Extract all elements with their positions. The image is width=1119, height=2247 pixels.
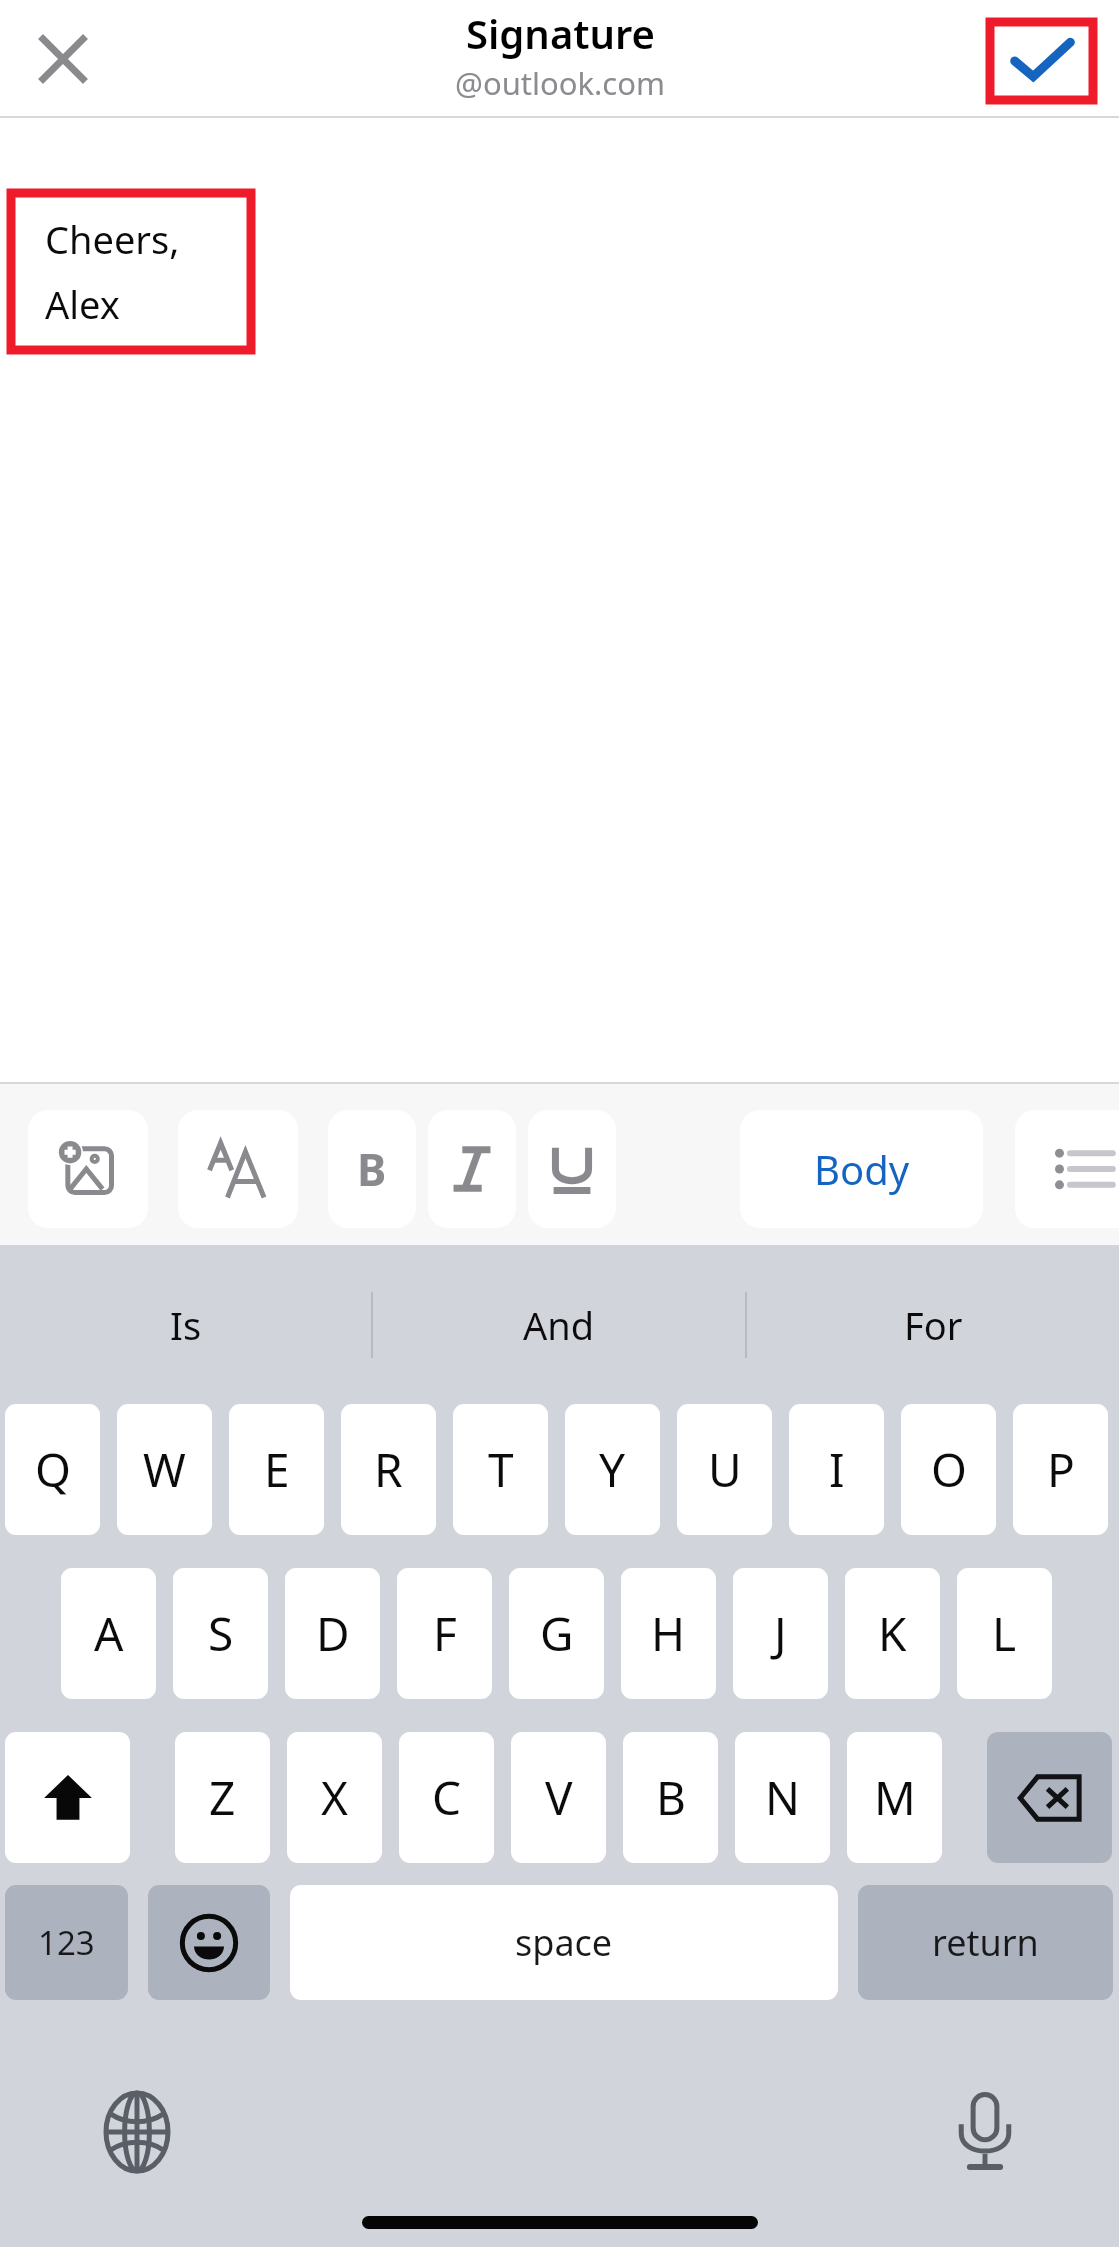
staticText: T bbox=[488, 1438, 514, 1501]
staticText: U bbox=[708, 1438, 742, 1501]
button[interactable]: N bbox=[735, 1732, 830, 1863]
staticText: X bbox=[321, 1766, 348, 1829]
staticText: F bbox=[433, 1602, 457, 1665]
button[interactable]: D bbox=[285, 1568, 380, 1699]
other: Underline bbox=[549, 1146, 595, 1192]
staticText: Z bbox=[209, 1766, 236, 1829]
button[interactable]: Is bbox=[0, 1245, 371, 1405]
button[interactable]: Bulleted list bbox=[1015, 1110, 1119, 1228]
staticText: E bbox=[264, 1438, 290, 1501]
button[interactable]: Done bbox=[990, 22, 1093, 100]
staticText: Is bbox=[170, 1299, 202, 1351]
other: Bulleted list bbox=[1056, 1147, 1114, 1191]
staticText: Body bbox=[814, 1142, 910, 1196]
button[interactable]: P bbox=[1013, 1404, 1108, 1535]
staticText: And bbox=[523, 1299, 595, 1351]
staticText: K bbox=[878, 1602, 907, 1665]
staticText: B bbox=[357, 1139, 387, 1199]
staticText: N bbox=[765, 1766, 800, 1829]
staticText: B bbox=[656, 1766, 686, 1829]
staticText: V bbox=[545, 1766, 573, 1829]
staticText: For bbox=[904, 1299, 963, 1351]
button[interactable]: W bbox=[117, 1404, 212, 1535]
button[interactable]: B bbox=[328, 1110, 416, 1228]
staticText: G bbox=[540, 1602, 574, 1665]
button[interactable]: Body bbox=[740, 1110, 983, 1228]
staticText: return bbox=[932, 1918, 1039, 1967]
button[interactable]: S bbox=[173, 1568, 268, 1699]
staticText: @outlook.com bbox=[455, 62, 665, 104]
staticText: space bbox=[515, 1918, 613, 1967]
other: Insert image bbox=[60, 1141, 116, 1197]
button[interactable]: J bbox=[733, 1568, 828, 1699]
button[interactable]: Change keyboard bbox=[95, 2090, 179, 2174]
staticText: Alex bbox=[45, 278, 120, 330]
button[interactable]: Backspace bbox=[987, 1732, 1112, 1863]
button[interactable]: Emoji bbox=[148, 1885, 270, 2000]
staticText: Signature bbox=[466, 6, 655, 60]
button[interactable]: K bbox=[845, 1568, 940, 1699]
button[interactable]: Shift bbox=[5, 1732, 130, 1863]
button[interactable]: O bbox=[901, 1404, 996, 1535]
button[interactable]: Underline bbox=[528, 1110, 616, 1228]
button[interactable]: Z bbox=[175, 1732, 270, 1863]
staticText: Y bbox=[599, 1438, 626, 1501]
button[interactable]: H bbox=[621, 1568, 716, 1699]
button[interactable]: G bbox=[509, 1568, 604, 1699]
button[interactable]: C bbox=[399, 1732, 494, 1863]
button[interactable]: Q bbox=[5, 1404, 100, 1535]
button[interactable]: M bbox=[847, 1732, 942, 1863]
button[interactable]: L bbox=[957, 1568, 1052, 1699]
staticText: C bbox=[432, 1766, 462, 1829]
button[interactable]: E bbox=[229, 1404, 324, 1535]
button[interactable]: A bbox=[61, 1568, 156, 1699]
staticText: I bbox=[829, 1438, 845, 1501]
staticText: 123 bbox=[38, 1920, 95, 1965]
button[interactable]: Y bbox=[565, 1404, 660, 1535]
button[interactable]: space bbox=[290, 1885, 838, 2000]
button[interactable]: R bbox=[341, 1404, 436, 1535]
button[interactable]: Insert image bbox=[28, 1110, 148, 1228]
button[interactable]: Close bbox=[18, 14, 108, 104]
button[interactable]: F bbox=[397, 1568, 492, 1699]
staticText: Q bbox=[35, 1438, 71, 1501]
staticText: M bbox=[874, 1766, 916, 1829]
button[interactable]: And bbox=[373, 1245, 745, 1405]
button[interactable]: T bbox=[453, 1404, 548, 1535]
staticText: R bbox=[374, 1438, 403, 1501]
staticText: D bbox=[316, 1602, 350, 1665]
button[interactable]: For bbox=[747, 1245, 1119, 1405]
staticText: H bbox=[651, 1602, 686, 1665]
other: Font size bbox=[207, 1138, 269, 1200]
button[interactable]: return bbox=[858, 1885, 1113, 2000]
staticText: L bbox=[992, 1602, 1017, 1665]
staticText: S bbox=[208, 1602, 234, 1665]
button[interactable]: B bbox=[623, 1732, 718, 1863]
staticText: J bbox=[774, 1602, 787, 1665]
button[interactable]: Dictation bbox=[943, 2090, 1027, 2174]
button[interactable]: V bbox=[511, 1732, 606, 1863]
staticText: W bbox=[143, 1438, 186, 1501]
button[interactable]: 123 bbox=[5, 1885, 128, 2000]
staticText: A bbox=[94, 1602, 124, 1665]
button[interactable]: X bbox=[287, 1732, 382, 1863]
other: Italic bbox=[450, 1147, 494, 1191]
staticText: P bbox=[1047, 1438, 1075, 1501]
button[interactable]: Italic bbox=[428, 1110, 516, 1228]
button[interactable]: I bbox=[789, 1404, 884, 1535]
button[interactable]: Font size bbox=[178, 1110, 298, 1228]
staticText: O bbox=[931, 1438, 967, 1501]
button[interactable]: U bbox=[677, 1404, 772, 1535]
staticText: Cheers, bbox=[45, 213, 180, 265]
